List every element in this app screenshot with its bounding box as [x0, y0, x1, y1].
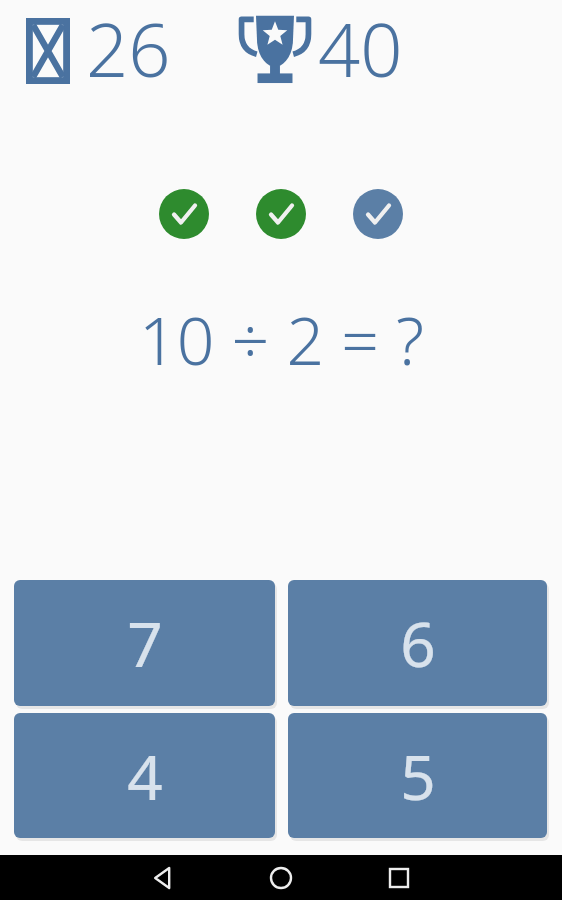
staticText: 4 [127, 734, 163, 818]
button[interactable]: 4 [14, 713, 275, 838]
button[interactable]: 6 [288, 580, 547, 706]
button[interactable]: 7 [14, 580, 275, 706]
staticText: 10 ÷ 2 = ? [139, 294, 424, 384]
button[interactable]: Back [143, 858, 183, 898]
button[interactable]: Answered correctly [159, 189, 209, 239]
button[interactable]: Recent apps [379, 858, 419, 898]
staticText: 6 [400, 601, 436, 685]
staticText: 5 [400, 734, 436, 818]
other: Time remaining [26, 18, 70, 84]
button[interactable]: Home [261, 858, 301, 898]
button[interactable]: Answered correctly [353, 189, 403, 239]
staticText: 40 [318, 0, 403, 99]
other: Score [237, 12, 313, 86]
staticText: 7 [127, 601, 163, 685]
staticText: 26 [86, 0, 171, 99]
button[interactable]: 5 [288, 713, 547, 838]
button[interactable]: Answered correctly [256, 189, 306, 239]
